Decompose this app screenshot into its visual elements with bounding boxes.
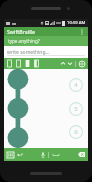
- button[interactable]: More options: [79, 27, 85, 36]
- button[interactable]: 4: [69, 78, 83, 92]
- button[interactable]: Next: [67, 58, 73, 69]
- button[interactable]: Paste: [15, 58, 22, 69]
- staticText: type anything?: [8, 38, 40, 44]
- staticText: 6: [74, 128, 78, 136]
- button[interactable]: Cut: [33, 58, 40, 69]
- button[interactable]: 5: [69, 102, 83, 116]
- button[interactable]: Copy: [6, 58, 13, 69]
- button[interactable]: Select all: [24, 58, 31, 69]
- staticText: SwiftBraille: [7, 28, 35, 35]
- staticText: write something...: [7, 49, 50, 56]
- button[interactable]: 6: [69, 125, 83, 139]
- button[interactable]: Backspace: [76, 148, 86, 161]
- staticText: 10:59 AM: [67, 20, 86, 26]
- button[interactable]: Previous: [60, 58, 66, 69]
- button[interactable]: Enter: [16, 148, 24, 161]
- button[interactable]: Space: [51, 148, 60, 161]
- button[interactable]: write something...: [7, 48, 85, 56]
- button[interactable]: type anything?: [4, 36, 88, 46]
- staticText: 4: [74, 81, 78, 89]
- button[interactable]: Voice input: [39, 148, 46, 161]
- button[interactable]: Keyboard: [6, 148, 15, 161]
- button[interactable]: Braille dots 1 2 3: [7, 69, 33, 148]
- staticText: 5: [74, 105, 78, 113]
- button[interactable]: Change language: [78, 58, 86, 69]
